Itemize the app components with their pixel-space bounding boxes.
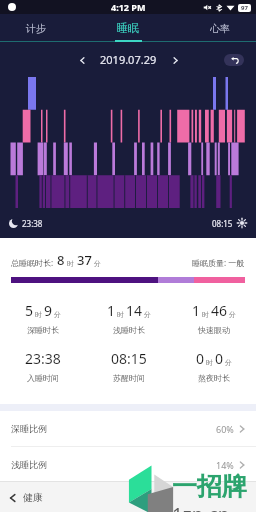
button[interactable]: Next day [166,51,184,69]
staticText: 4:12 PM [111,1,146,13]
staticText: 快速眼动 [198,325,230,335]
staticText: 分 [225,358,232,367]
staticText: 1zp.cn [172,502,230,512]
button[interactable]: 深睡比例 [0,411,256,446]
button[interactable]: 浅睡比例 [0,447,256,482]
staticText: 0 [196,349,205,368]
staticText: 计步 [26,22,46,35]
staticText: 分 [229,310,236,319]
button[interactable]: Previous day [73,51,91,69]
staticText: 2019.07.29 [100,52,157,67]
staticText: 深睡比例 [11,423,47,434]
staticText: 总睡眠时长: [11,257,54,268]
staticText: 8 [57,251,65,269]
staticText: 入睡时间 [27,373,59,383]
staticText: 时 [35,310,42,319]
staticText: 08:15 [212,218,233,229]
staticText: 0 [215,349,224,368]
staticText: 时 [67,259,74,268]
button[interactable]: 快速眼动比例 [0,483,256,512]
staticText: 浅睡时长 [113,325,145,335]
staticText: 23:38 [25,349,61,368]
staticText: 分 [54,310,61,319]
button[interactable]: 健康 [0,487,53,508]
staticText: 浅睡比例 [11,459,47,470]
staticText: 心率 [210,22,230,35]
staticText: 5 [25,301,34,320]
staticText: 健康 [23,491,43,504]
staticText: 14% [216,459,234,471]
staticText: 深睡时长 [27,325,59,335]
button[interactable]: 心率 [190,14,250,42]
staticText: 苏醒时间 [113,373,145,383]
staticText: 分 [144,310,151,319]
staticText: 9 [44,301,53,320]
staticText: 1 [192,301,201,320]
staticText: 分 [94,259,101,268]
staticText: 熬夜时长 [198,373,230,383]
staticText: 97 [241,4,248,12]
staticText: 46 [211,301,228,320]
staticText: 时 [206,358,213,367]
staticText: 23:38 [22,218,43,229]
staticText: 14 [126,301,143,320]
staticText: 37 [77,251,92,269]
button[interactable]: Reset [224,54,244,66]
staticText: 08:15 [111,349,147,368]
button[interactable]: 计步 [6,14,66,42]
staticText: 快速眼动比例 [11,492,65,503]
staticText: 时 [202,310,209,319]
staticText: 60% [216,423,234,435]
staticText: 睡眠 [117,21,139,35]
staticText: 1 [107,301,116,320]
staticText: 一招牌 [172,471,247,502]
staticText: 26% [216,492,234,504]
button[interactable]: 睡眠 [98,14,158,42]
staticText: 时 [117,310,124,319]
staticText: 睡眠质量: 一般 [192,257,245,268]
